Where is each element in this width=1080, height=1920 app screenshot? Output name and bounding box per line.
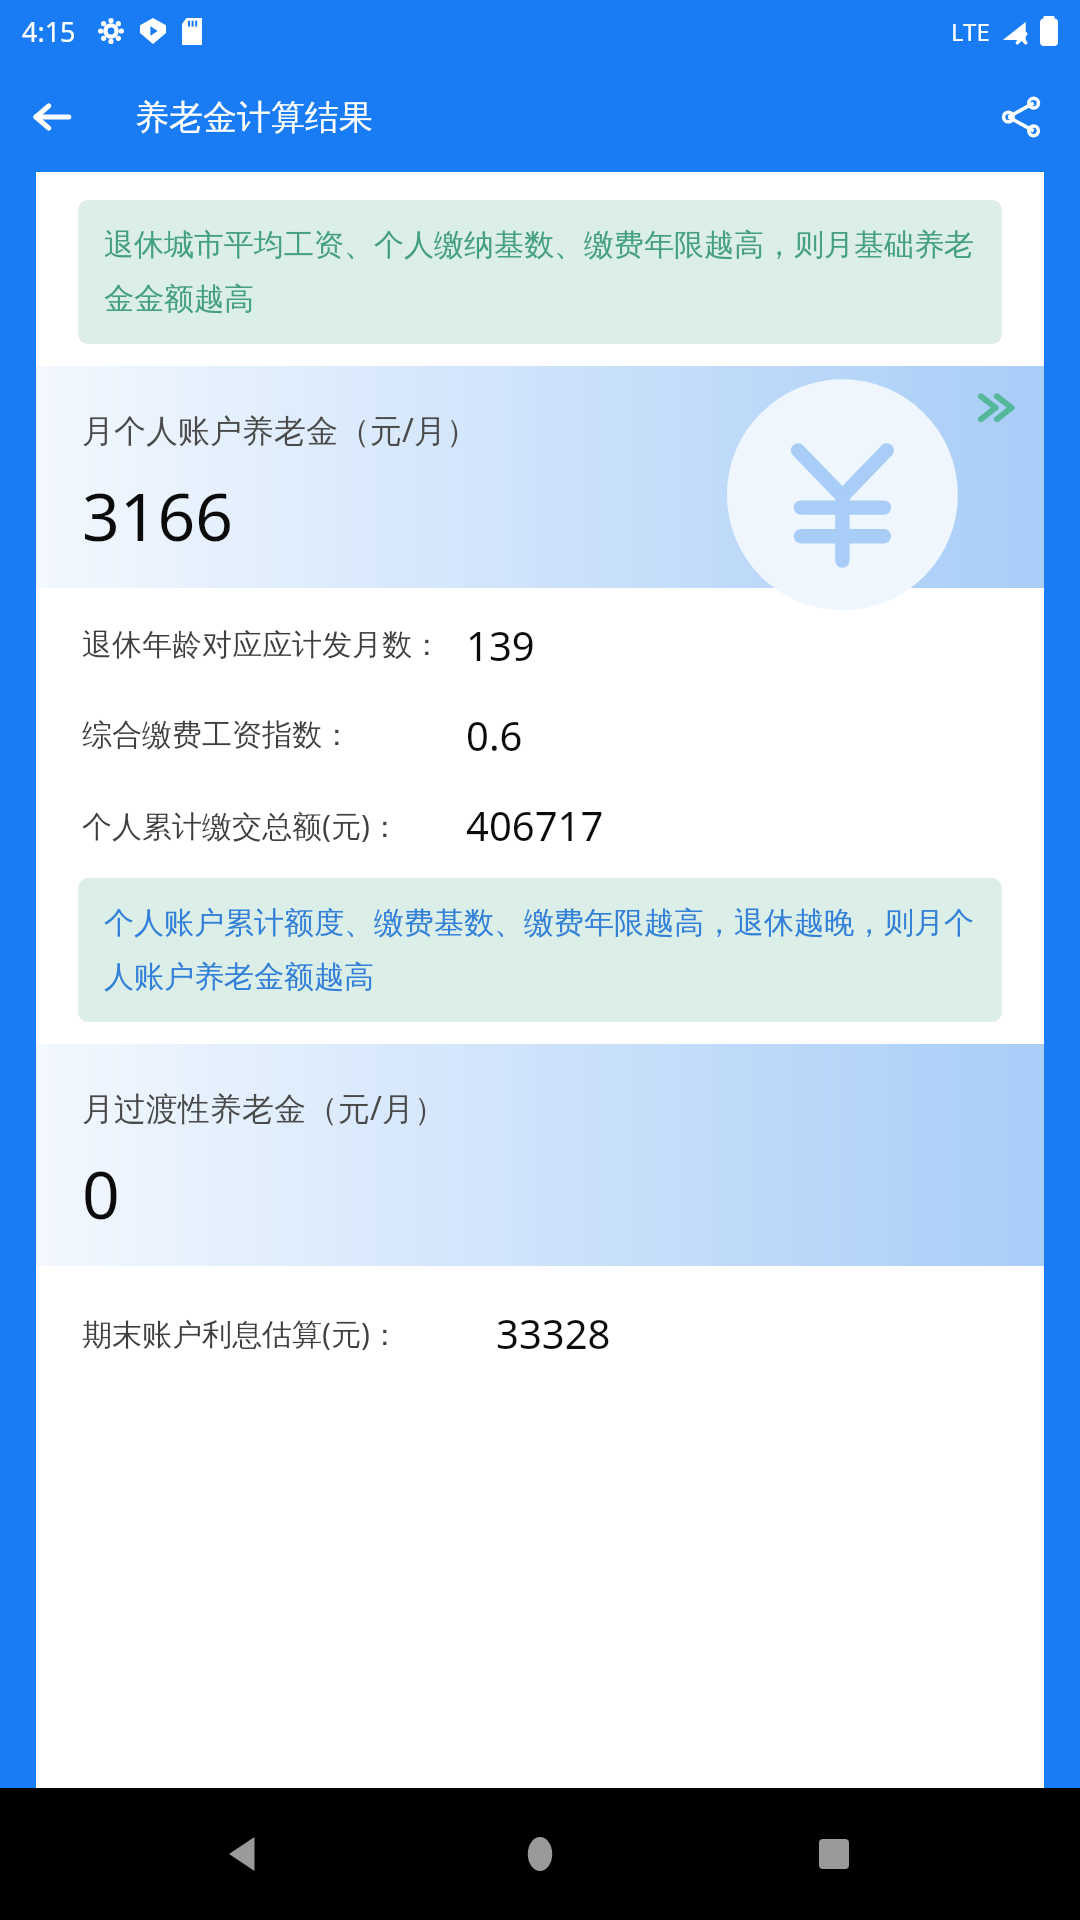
staticText: 退休年龄对应应计发月数： (82, 626, 442, 664)
staticText: 个人账户累计额度、缴费基数、缴费年限越高，退休越晚，则月个人账户养老金额越高 (104, 904, 976, 996)
staticText: 4:15 (22, 13, 76, 50)
staticText: LTE (951, 15, 990, 48)
staticText: 综合缴费工资指数： (82, 716, 352, 754)
staticText: 0.6 (466, 708, 523, 762)
button[interactable]: 月过渡性养老金（元/月） (36, 1044, 1044, 1266)
staticText: 0 (82, 1148, 120, 1238)
button[interactable]: Back (18, 83, 86, 151)
button[interactable]: Home (492, 1806, 588, 1902)
staticText: 养老金计算结果 (135, 96, 373, 139)
button[interactable]: 综合缴费工资指数： (82, 708, 998, 762)
staticText: 月过渡性养老金（元/月） (82, 1086, 446, 1130)
staticText: 139 (466, 618, 535, 672)
button[interactable]: Back (198, 1806, 294, 1902)
button[interactable]: 期末账户利息估算(元)： (82, 1306, 998, 1360)
staticText: 33328 (496, 1306, 611, 1360)
staticText: 月个人账户养老金（元/月） (82, 408, 478, 452)
button[interactable]: 月个人账户养老金（元/月） (36, 366, 1044, 588)
button[interactable]: Share (986, 82, 1056, 152)
button[interactable]: Recents (786, 1806, 882, 1902)
button[interactable]: 退休年龄对应应计发月数： (82, 618, 998, 672)
staticText: 406717 (466, 798, 604, 852)
button[interactable]: 个人累计缴交总额(元)： (82, 798, 998, 852)
staticText: 退休城市平均工资、个人缴纳基数、缴费年限越高，则月基础养老金金额越高 (104, 226, 976, 318)
staticText: 3166 (82, 470, 234, 560)
staticText: 期末账户利息估算(元)： (82, 1313, 400, 1354)
staticText: 个人累计缴交总额(元)： (82, 805, 400, 846)
